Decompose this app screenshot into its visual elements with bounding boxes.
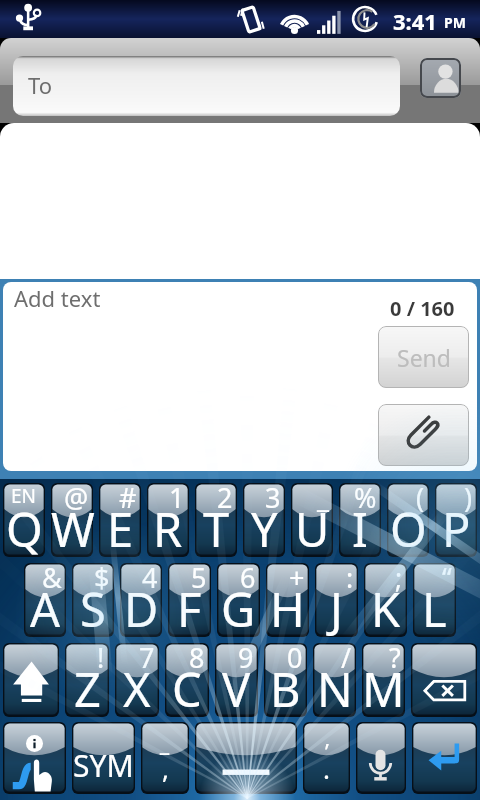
button[interactable]: ( (387, 483, 429, 557)
staticText: K (371, 577, 401, 641)
staticText: B (270, 657, 301, 721)
button[interactable]: $ (72, 563, 114, 637)
button[interactable]: Voice input (356, 722, 406, 794)
staticText: – (159, 736, 171, 766)
staticText: 5 (191, 559, 207, 596)
button[interactable]: ’ (303, 722, 350, 794)
staticText: @ (64, 479, 89, 516)
staticText: A (30, 577, 61, 641)
button[interactable]: Choose contact (420, 58, 461, 98)
staticText: G (221, 577, 256, 641)
button[interactable]: Backspace (411, 643, 477, 717)
button[interactable]: ; (364, 563, 407, 637)
staticText: # (119, 479, 137, 516)
staticText: R (153, 497, 183, 561)
staticText: O (390, 497, 427, 561)
staticText: 6 (240, 559, 256, 596)
staticText: & (42, 559, 62, 596)
staticText: P (442, 497, 471, 561)
button[interactable]: ! (65, 643, 109, 717)
staticText: 2 (217, 479, 233, 516)
button[interactable]: 9 (215, 643, 258, 717)
button[interactable]: EN (3, 483, 45, 557)
staticText: E (107, 497, 134, 561)
staticText: I (352, 497, 368, 561)
staticText: T (203, 497, 230, 561)
staticText: V (222, 657, 251, 721)
button[interactable]: “ (413, 563, 456, 637)
button[interactable]: + (266, 563, 309, 637)
staticText: 8 (189, 639, 205, 676)
staticText: ’ (325, 736, 329, 766)
staticText: N (317, 657, 353, 721)
button[interactable]: % (339, 483, 381, 557)
staticText: , (162, 751, 169, 786)
button[interactable]: Shift (3, 643, 59, 717)
button[interactable]: 6 (217, 563, 260, 637)
button[interactable] (378, 404, 469, 466)
button[interactable]: 4 (120, 563, 162, 637)
staticText: $ (94, 559, 110, 596)
staticText: 1 (169, 479, 185, 516)
staticText: W (51, 497, 93, 561)
staticText: % (354, 479, 377, 516)
staticText: ( (416, 479, 425, 516)
staticText: ! (97, 639, 105, 676)
staticText: + (289, 559, 305, 596)
button[interactable]: Space (195, 722, 297, 794)
staticText: U (295, 497, 330, 561)
button[interactable]: _ (291, 483, 333, 557)
staticText: “ (442, 559, 452, 596)
button[interactable]: ) (435, 483, 477, 557)
staticText: S (80, 577, 106, 641)
button[interactable]: 0 (264, 643, 307, 717)
button[interactable]: & (24, 563, 66, 637)
button[interactable]: 3 (243, 483, 285, 557)
staticText: : (346, 559, 354, 596)
button[interactable]: – (141, 722, 189, 794)
staticText: EN (11, 483, 37, 509)
staticText: _ (317, 479, 329, 516)
staticText: J (330, 577, 343, 641)
staticText: Y (251, 497, 278, 561)
button[interactable]: 5 (168, 563, 211, 637)
button[interactable]: 8 (165, 643, 209, 717)
button[interactable]: Input method options (3, 722, 66, 794)
staticText: Send (397, 342, 451, 373)
staticText: 3:41 (393, 6, 437, 36)
staticText: . (323, 751, 330, 786)
button[interactable]: Enter (412, 722, 477, 794)
staticText: 0 / 160 (390, 295, 455, 322)
button[interactable]: : (315, 563, 358, 637)
button[interactable]: 7 (115, 643, 159, 717)
staticText: To (28, 70, 53, 100)
staticText: 4 (142, 559, 158, 596)
button[interactable]: 2 (195, 483, 237, 557)
staticText: D (124, 577, 159, 641)
button[interactable]: Send (378, 326, 469, 388)
button[interactable]: / (313, 643, 356, 717)
staticText: 3 (265, 479, 281, 516)
staticText: Add text (14, 283, 101, 313)
staticText: ? (389, 639, 401, 676)
button[interactable]: 1 (147, 483, 189, 557)
staticText: M (362, 657, 405, 721)
staticText: SYM (73, 745, 134, 786)
staticText: 7 (139, 639, 155, 676)
button[interactable]: @ (51, 483, 93, 557)
staticText: F (177, 577, 202, 641)
staticText: H (270, 577, 305, 641)
staticText: Q (6, 497, 43, 561)
button[interactable]: SYM (72, 722, 135, 794)
staticText: 9 (238, 639, 254, 676)
staticText: L (422, 577, 447, 641)
button[interactable]: # (99, 483, 141, 557)
staticText: Z (74, 657, 101, 721)
button[interactable]: ? (362, 643, 405, 717)
button[interactable]: To (13, 56, 400, 116)
staticText: 0 (287, 639, 303, 676)
staticText: ) (464, 479, 473, 516)
staticText: X (123, 657, 151, 721)
staticText: / (341, 639, 352, 676)
staticText: PM (444, 13, 466, 32)
